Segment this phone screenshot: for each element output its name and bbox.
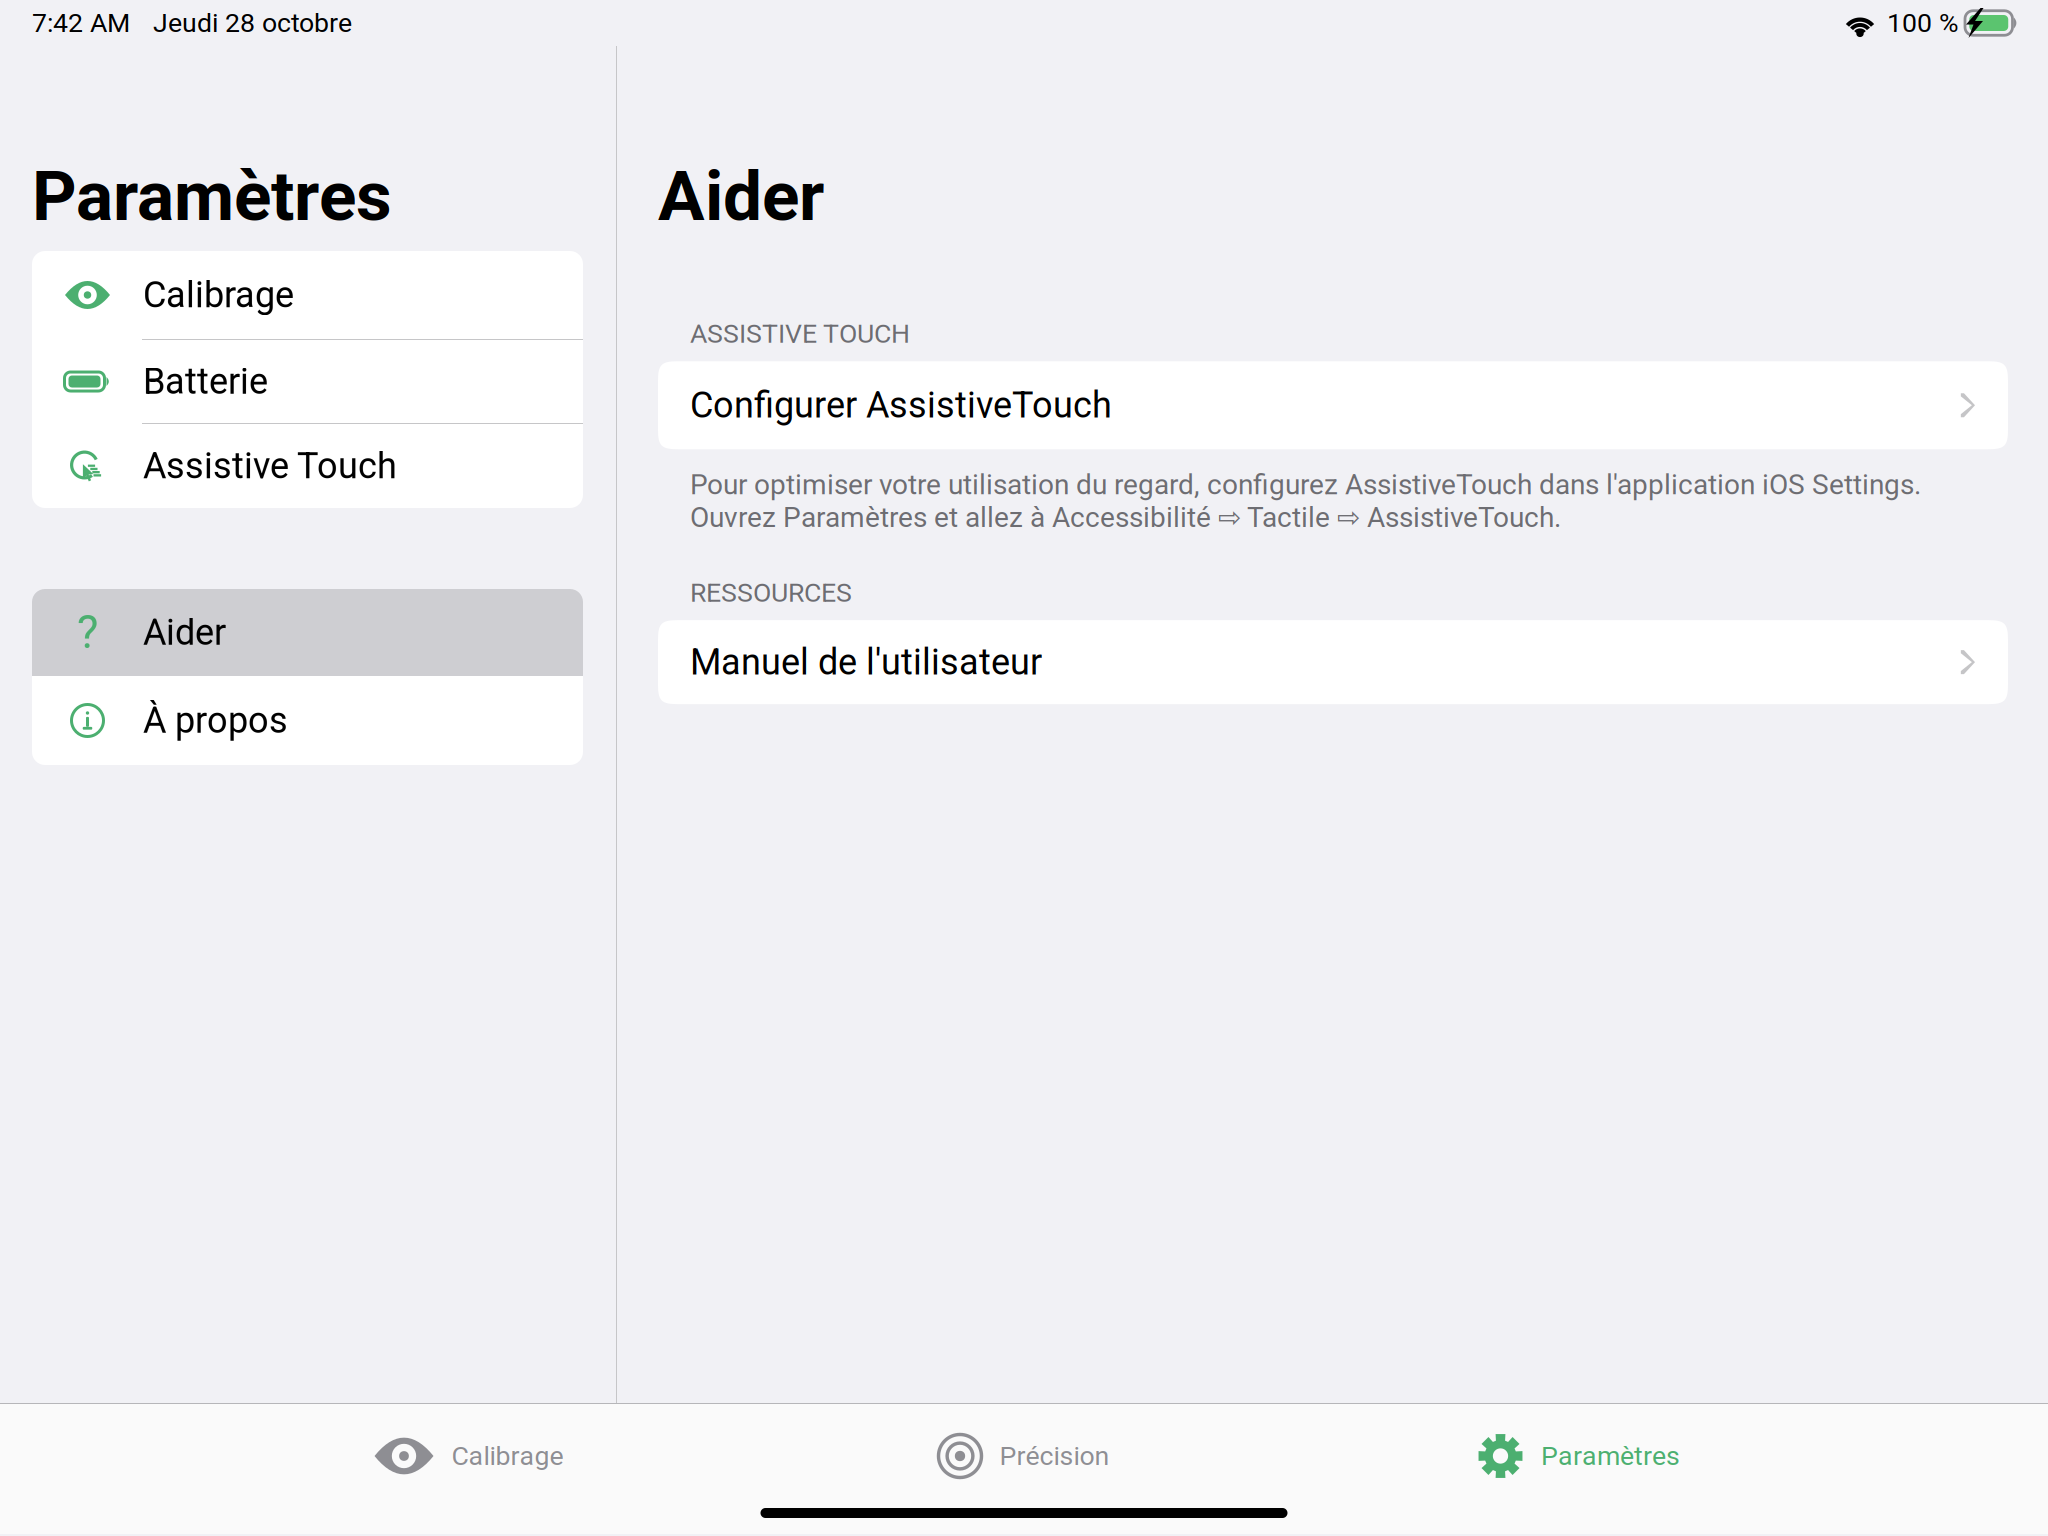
button[interactable]: Manuel de l'utilisateur — [658, 620, 2008, 704]
staticText: Paramètres — [32, 156, 392, 237]
staticText: Calibrage — [143, 274, 294, 316]
staticText: Jeudi 28 octobre — [153, 7, 352, 39]
staticText: Configurer AssistiveTouch — [690, 384, 1112, 426]
staticText: Aider — [658, 156, 824, 237]
staticText: Ouvrez Paramètres et allez à Accessibili… — [690, 501, 1561, 534]
staticText: Aider — [143, 611, 226, 654]
button[interactable]: À propos — [32, 676, 583, 765]
button[interactable]: Configurer AssistiveTouch — [658, 361, 2008, 449]
button[interactable]: Précision — [746, 1433, 1301, 1479]
button[interactable]: Paramètres — [1301, 1433, 1856, 1479]
staticText: Pour optimiser votre utilisation du rega… — [690, 468, 1921, 501]
staticText: Batterie — [143, 360, 268, 403]
button[interactable]: Calibrage — [191, 1433, 746, 1479]
staticText: 100 % — [1887, 7, 1959, 39]
staticText: RESSOURCES — [690, 577, 852, 608]
staticText: Paramètres — [1541, 1440, 1680, 1472]
staticText: À propos — [143, 699, 288, 742]
button[interactable]: ? — [32, 589, 583, 676]
staticText: Précision — [999, 1440, 1109, 1472]
staticText: ASSISTIVE TOUCH — [690, 318, 910, 349]
button[interactable]: Calibrage — [32, 251, 583, 339]
staticText: Calibrage — [451, 1440, 563, 1472]
staticText: 7:42 AM — [32, 7, 130, 39]
staticText: Manuel de l'utilisateur — [690, 641, 1042, 683]
button[interactable]: Assistive Touch — [32, 424, 583, 508]
button[interactable]: Batterie — [32, 340, 583, 423]
staticText: Assistive Touch — [143, 445, 397, 487]
staticText: ? — [77, 606, 98, 659]
